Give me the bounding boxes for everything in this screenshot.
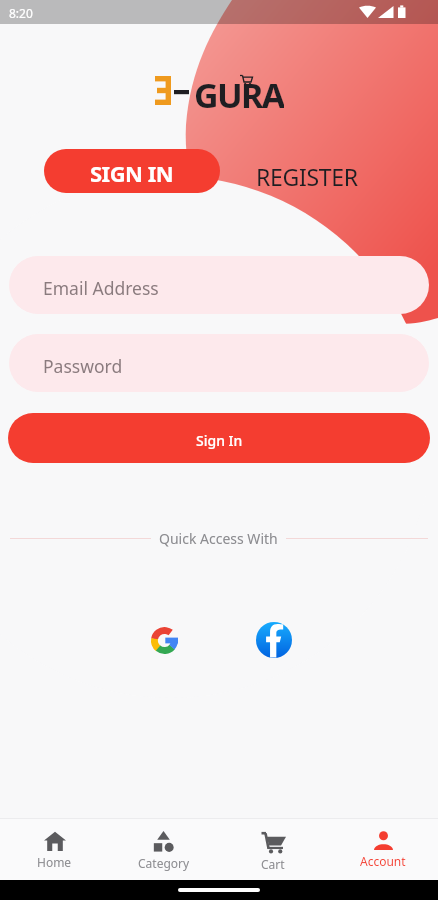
button[interactable]: Email Address [9, 256, 429, 314]
staticText: Category [138, 855, 190, 871]
staticText: Cart [261, 856, 285, 872]
staticText: Account [360, 853, 406, 869]
button[interactable]: Sign in with Facebook [254, 620, 294, 660]
staticText: REGISTER [256, 161, 358, 192]
staticText: Quick Access With [159, 529, 278, 548]
button[interactable]: Password [9, 334, 429, 392]
staticText: Email Address [43, 276, 159, 300]
button[interactable]: Sign In [8, 413, 430, 463]
button[interactable]: REGISTER [256, 149, 358, 193]
button[interactable]: Category [109, 819, 218, 871]
staticText: 8:20 [9, 5, 33, 21]
button[interactable]: Cart [218, 819, 328, 872]
staticText: Home [37, 854, 72, 870]
button[interactable]: Account [328, 819, 438, 869]
staticText: GURA [194, 72, 284, 108]
button[interactable]: Home [0, 819, 109, 870]
button[interactable]: SIGN IN [44, 149, 220, 193]
button[interactable]: Sign in with Google [144, 620, 184, 660]
staticText: Sign In [196, 431, 243, 450]
staticText: Password [43, 354, 123, 378]
staticText: SIGN IN [90, 158, 174, 188]
